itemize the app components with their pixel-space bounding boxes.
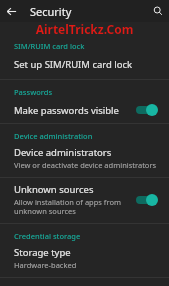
staticText: Storage type (14, 246, 71, 259)
button[interactable]: Device administrators (0, 143, 169, 177)
staticText: AirtelTrickz.Com (0, 21, 169, 37)
staticText: Unknown sources (14, 183, 94, 196)
staticText: View or deactivate device administrators (14, 160, 157, 170)
staticText: SIM/RUIM card lock (14, 41, 85, 51)
staticText: Make passwords visible (14, 104, 119, 117)
staticText: Hardware-backed (14, 260, 77, 270)
staticText: Passwords (14, 87, 53, 97)
staticText: Set up SIM/RUIM card lock (14, 58, 133, 71)
button[interactable]: Storage type (0, 243, 169, 277)
button[interactable]: Toggle on (135, 193, 159, 207)
staticText: Credential storage (14, 231, 81, 241)
button[interactable]: Search (147, 0, 169, 22)
button[interactable]: Make passwords visible (0, 99, 169, 123)
button[interactable]: Back (0, 0, 22, 22)
button[interactable]: Unknown sources (0, 178, 169, 223)
staticText: Allow installation of apps from unknown … (14, 197, 129, 217)
staticText: Device administration (14, 131, 93, 141)
button[interactable]: Set up SIM/RUIM card lock (0, 53, 169, 79)
button[interactable]: Toggle on (135, 103, 159, 117)
staticText: Security (30, 4, 72, 19)
staticText: Device administrators (14, 146, 112, 159)
